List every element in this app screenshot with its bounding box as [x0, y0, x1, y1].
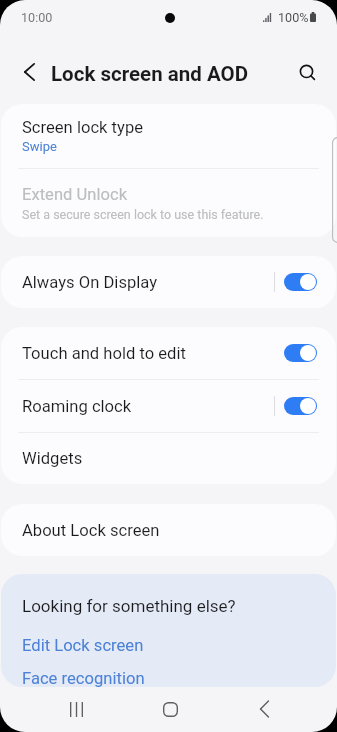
button[interactable]: Touch and hold to edit: [1, 327, 336, 379]
staticText: Screen lock type: [22, 118, 143, 137]
staticText: Looking for something else?: [22, 596, 236, 616]
staticText: Lock screen and AOD: [51, 62, 248, 86]
staticText: Extend Unlock: [22, 185, 128, 204]
other: Toggle: [284, 344, 317, 362]
staticText: 100%: [278, 10, 309, 25]
button[interactable]: Always On Display: [1, 256, 336, 308]
staticText: Roaming clock: [22, 397, 132, 416]
button[interactable]: Back: [240, 685, 288, 732]
staticText: Always On Display: [22, 273, 158, 292]
other: Toggle: [284, 397, 317, 415]
button[interactable]: About Lock screen: [1, 504, 336, 556]
staticText: Edit Lock screen: [22, 636, 144, 655]
other: Toggle: [284, 273, 317, 291]
button[interactable]: Screen lock type: [1, 104, 336, 168]
staticText: Swipe: [22, 139, 57, 154]
button[interactable]: Extend Unlock: [1, 169, 336, 237]
button[interactable]: Widgets: [1, 433, 336, 484]
staticText: Face recognition: [22, 669, 145, 687]
button[interactable]: Face recognition: [1, 659, 336, 687]
staticText: Widgets: [22, 449, 83, 468]
button[interactable]: Roaming clock: [1, 380, 336, 432]
button[interactable]: Recent apps: [52, 685, 100, 732]
button[interactable]: Back: [11, 54, 47, 90]
button[interactable]: Home: [146, 685, 194, 732]
button[interactable]: Search: [288, 53, 324, 89]
staticText: 10:00: [21, 10, 53, 25]
staticText: About Lock screen: [22, 521, 160, 540]
staticText: Set a secure screen lock to use this fea…: [22, 207, 264, 222]
staticText: Touch and hold to edit: [22, 344, 186, 363]
button[interactable]: Edit Lock screen: [1, 626, 336, 658]
